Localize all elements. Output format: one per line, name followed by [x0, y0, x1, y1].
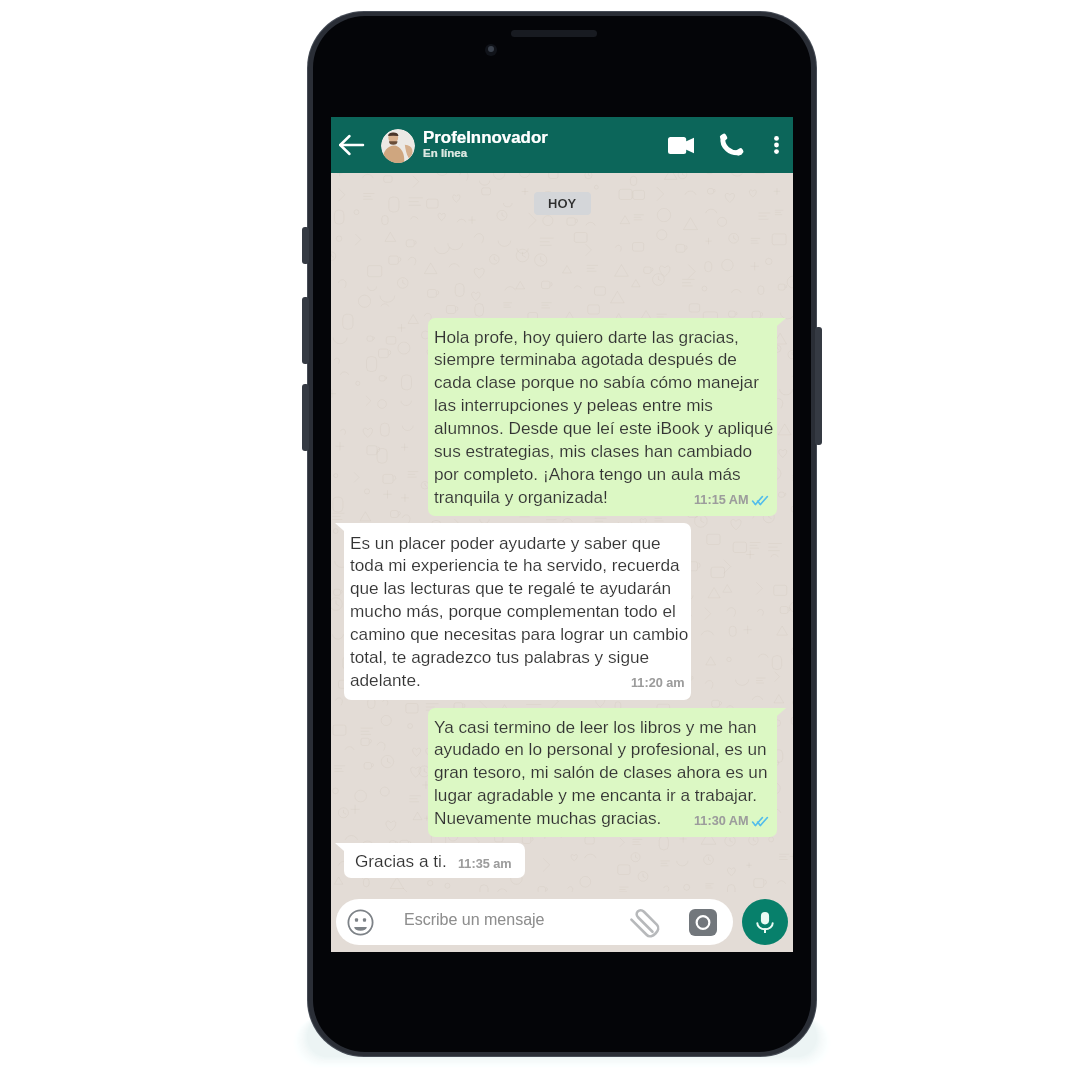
staticText: Gracias a ti. [355, 851, 447, 870]
staticText: 11:35 am [458, 857, 512, 871]
staticText: Ya casi termino de leer los libros y me … [434, 717, 777, 828]
staticText: En línea [423, 147, 468, 160]
button[interactable]: Attach [631, 910, 661, 938]
staticText: Escribe un mensaje [404, 911, 545, 929]
button[interactable]: Emoji [347, 909, 374, 936]
staticText: HOY [548, 196, 577, 211]
button[interactable]: Emoji [336, 899, 733, 945]
button[interactable]: Record voice message [742, 899, 788, 945]
button[interactable]: Voice call [709, 123, 754, 167]
staticText: ProfeInnovador [423, 128, 548, 147]
staticText: 11:20 am [631, 676, 685, 690]
staticText: 11:15 AM [694, 493, 749, 507]
staticText: 11:30 AM [694, 814, 749, 828]
button[interactable]: Back [331, 123, 371, 167]
button[interactable]: Camera [689, 909, 717, 936]
button[interactable]: Profile photo [381, 129, 415, 163]
button[interactable]: Es un placer poder ayudarte y saber que … [344, 523, 691, 700]
button[interactable]: Gracias a ti. [344, 843, 525, 878]
button[interactable]: Video call [658, 123, 704, 167]
staticText: Hola profe, hoy quiero darte las gracias… [434, 327, 777, 507]
button[interactable]: Ya casi termino de leer los libros y me … [428, 708, 777, 837]
button[interactable]: HOY [534, 192, 591, 215]
staticText: Es un placer poder ayudarte y saber que … [350, 533, 691, 690]
button[interactable]: More options [758, 123, 793, 167]
button[interactable]: Hola profe, hoy quiero darte las gracias… [428, 318, 777, 516]
